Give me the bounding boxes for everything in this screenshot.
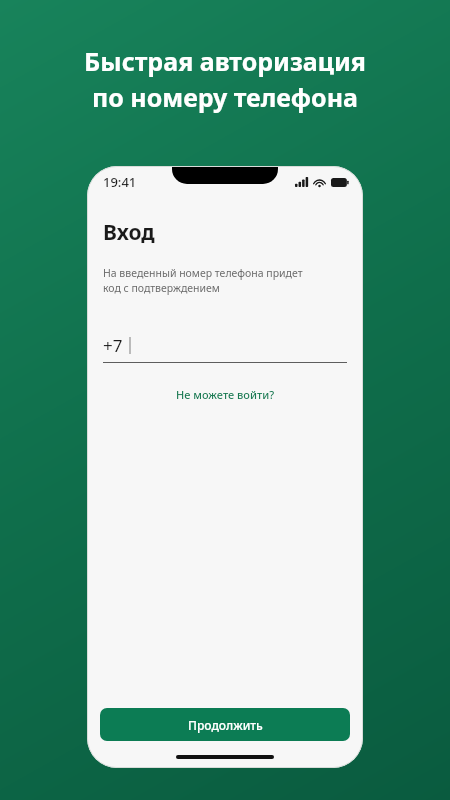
staticText: 19:41	[103, 173, 137, 191]
staticText: +7	[103, 334, 123, 357]
button[interactable]: Продолжить	[100, 708, 350, 741]
staticText: Продолжить	[188, 717, 263, 733]
button[interactable]: +7	[103, 331, 347, 359]
staticText: Вход	[103, 218, 155, 247]
staticText: по номеру телефона	[92, 80, 358, 114]
staticText: Быстрая авторизация	[84, 44, 366, 78]
staticText: На введенный номер телефона придет код с…	[103, 266, 303, 295]
button[interactable]: Не можете войти?	[172, 385, 279, 404]
staticText: Не можете войти?	[176, 387, 275, 402]
